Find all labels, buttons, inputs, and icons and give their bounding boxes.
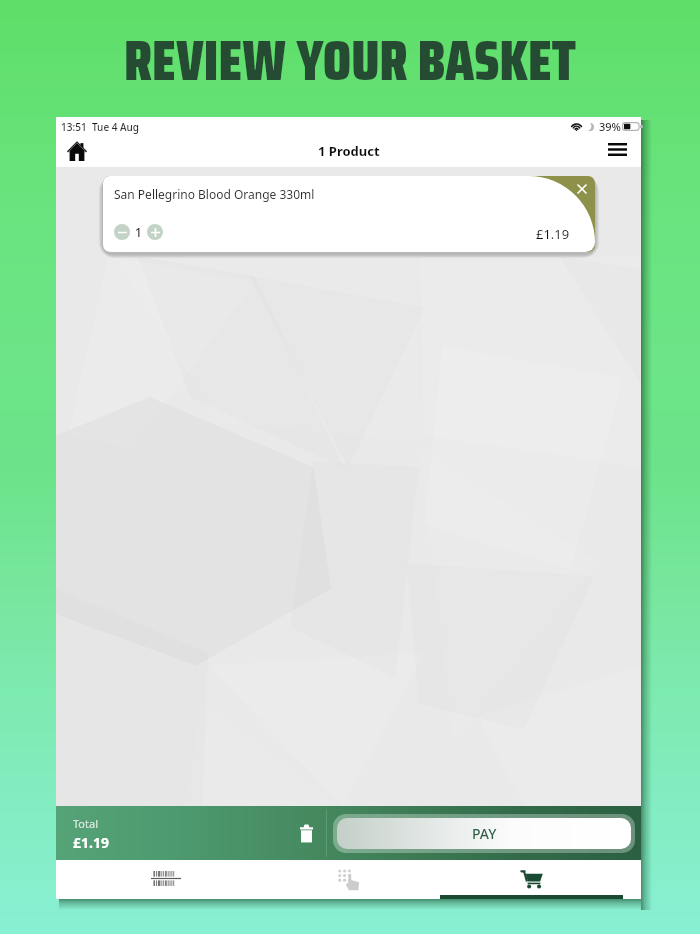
button[interactable]: Scan barcode bbox=[74, 860, 257, 899]
button[interactable]: Empty basket bbox=[291, 818, 321, 848]
staticText: 1 Product bbox=[318, 142, 380, 160]
button[interactable]: Home bbox=[63, 138, 91, 166]
button[interactable]: Remove item bbox=[103, 176, 595, 252]
button[interactable]: Increase quantity bbox=[147, 224, 163, 240]
staticText: San Pellegrino Blood Orange 330ml bbox=[114, 186, 315, 202]
staticText: REVIEW YOUR BASKET bbox=[0, 16, 700, 104]
button[interactable]: PAY bbox=[337, 818, 631, 849]
staticText: 1 bbox=[135, 224, 142, 240]
staticText: Tue 4 Aug bbox=[92, 120, 140, 134]
staticText: 39% bbox=[599, 119, 621, 134]
staticText: PAY bbox=[472, 824, 497, 843]
button[interactable]: Basket bbox=[440, 860, 623, 899]
staticText: £1.19 bbox=[73, 833, 109, 852]
staticText: £1.19 bbox=[536, 225, 570, 243]
button[interactable]: Decrease quantity bbox=[114, 224, 130, 240]
button[interactable]: Menu bbox=[603, 138, 631, 166]
staticText: 13:51 bbox=[61, 120, 87, 134]
button[interactable]: San Pellegrino Blood Orange 330ml bbox=[103, 176, 595, 252]
button[interactable]: Enter code manually bbox=[257, 860, 440, 899]
staticText: Total bbox=[73, 816, 98, 831]
